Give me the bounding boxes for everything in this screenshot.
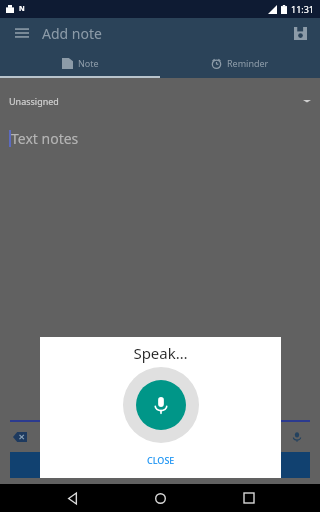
staticText: Reminder xyxy=(227,57,269,69)
button[interactable]: CLOSE xyxy=(40,446,281,474)
button[interactable]: Open navigation drawer xyxy=(8,19,36,47)
staticText: Note xyxy=(78,57,99,69)
button[interactable]: Voice input xyxy=(291,431,303,443)
staticText: CLOSE xyxy=(147,454,175,466)
button[interactable]: Home xyxy=(143,484,177,512)
button[interactable]: Unassigned xyxy=(9,88,311,114)
staticText: Text notes xyxy=(11,129,79,148)
button[interactable]: Note xyxy=(0,48,160,78)
button[interactable]: Reminder xyxy=(160,48,320,78)
staticText: Add note xyxy=(42,24,102,43)
button[interactable]: Back xyxy=(55,484,89,512)
staticText: 11:31 xyxy=(291,3,315,15)
button[interactable]: Backspace xyxy=(13,432,27,442)
button[interactable]: Save note xyxy=(286,19,314,47)
staticText: N xyxy=(19,4,25,14)
button[interactable]: Recent apps xyxy=(232,484,266,512)
staticText: Unassigned xyxy=(9,95,59,107)
button[interactable]: Speak now xyxy=(123,367,199,443)
staticText: Speak… xyxy=(133,343,188,363)
button[interactable] xyxy=(10,452,310,478)
